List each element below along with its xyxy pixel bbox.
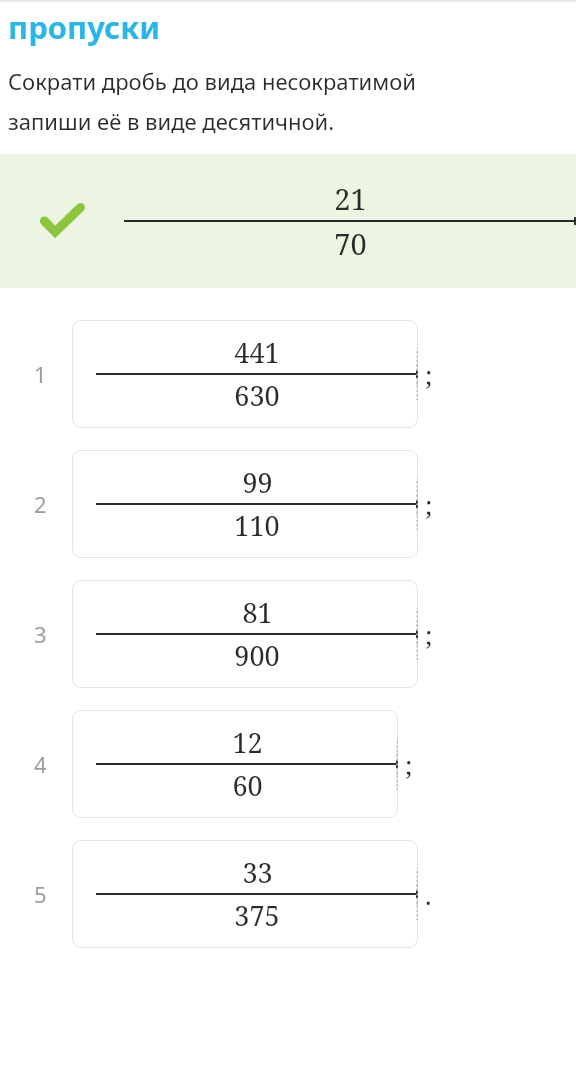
staticText: ; [425,617,433,652]
button[interactable]: 441 [72,320,418,428]
staticText: 4 [34,749,47,779]
staticText: пропуски [8,6,161,48]
staticText: запиши её в виде десятичной. [8,106,335,136]
staticText: . [425,877,432,912]
staticText: 375 [234,897,280,934]
staticText: ; [405,747,413,782]
staticText: 3 [34,619,47,649]
staticText: Сократи дробь до вида несократимой [8,66,416,96]
staticText: 110 [234,507,280,544]
staticText: 2 [34,489,47,519]
staticText: ; [425,357,433,392]
staticText: 900 [234,637,280,674]
staticText: 5 [34,879,47,909]
staticText: 12 [232,724,263,761]
staticText: ; [425,487,433,522]
staticText: 21 [334,179,367,218]
staticText: 81 [242,594,273,631]
staticText: 99 [242,464,273,501]
other: Correct [42,204,82,238]
staticText: 33 [242,854,273,891]
button[interactable]: 81 [72,580,418,688]
staticText: 60 [232,767,263,804]
staticText: 1 [34,359,47,389]
button[interactable]: Correct [0,154,576,288]
button[interactable]: 12 [72,710,398,818]
button[interactable]: 33 [72,840,418,948]
staticText: 441 [234,334,280,371]
staticText: 630 [234,377,280,414]
staticText: 70 [334,224,367,263]
button[interactable]: 99 [72,450,418,558]
